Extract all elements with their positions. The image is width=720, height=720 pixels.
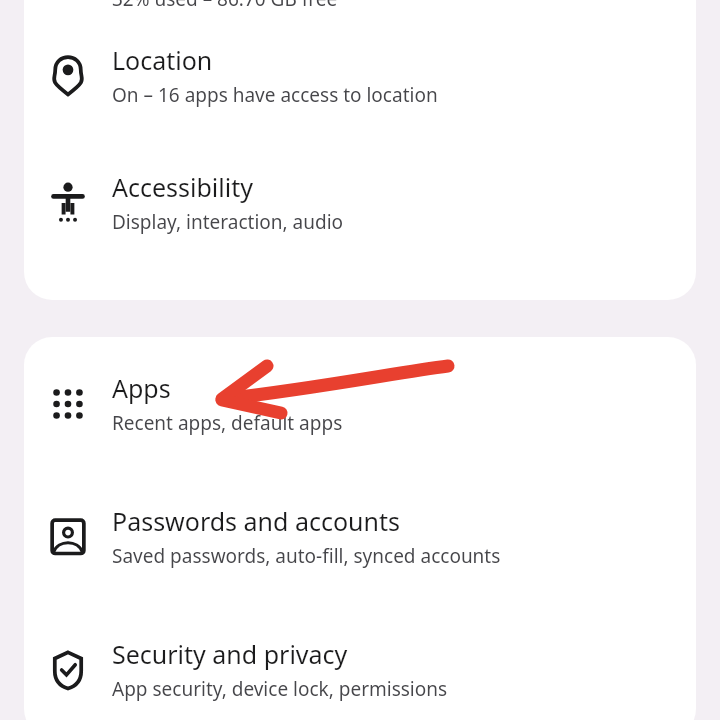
other: Security and privacy — [24, 603, 112, 720]
staticText: App security, device lock, permissions — [112, 676, 448, 702]
staticText: Recent apps, default apps — [112, 410, 343, 436]
other: Passwords and accounts — [24, 470, 112, 603]
button[interactable]: Security and privacy — [24, 603, 696, 720]
staticText: 32% used – 86.70 GB free — [112, 0, 338, 12]
button[interactable]: Accessibility — [24, 139, 696, 266]
staticText: Apps — [112, 371, 171, 405]
other: Location — [24, 12, 112, 139]
staticText: Display, interaction, audio — [112, 209, 344, 235]
button[interactable]: 32% used – 86.70 GB free — [24, 0, 696, 12]
staticText: On – 16 apps have access to location — [112, 82, 438, 108]
staticText: Location — [112, 43, 213, 77]
button[interactable]: Apps — [24, 337, 696, 470]
button[interactable]: Location — [24, 12, 696, 139]
staticText: Accessibility — [112, 170, 253, 204]
staticText: Passwords and accounts — [112, 504, 400, 538]
other: Accessibility — [24, 139, 112, 266]
staticText: Saved passwords, auto-fill, synced accou… — [112, 543, 501, 569]
button[interactable]: Passwords and accounts — [24, 470, 696, 603]
other: Apps — [24, 337, 112, 470]
staticText: Security and privacy — [112, 637, 348, 671]
